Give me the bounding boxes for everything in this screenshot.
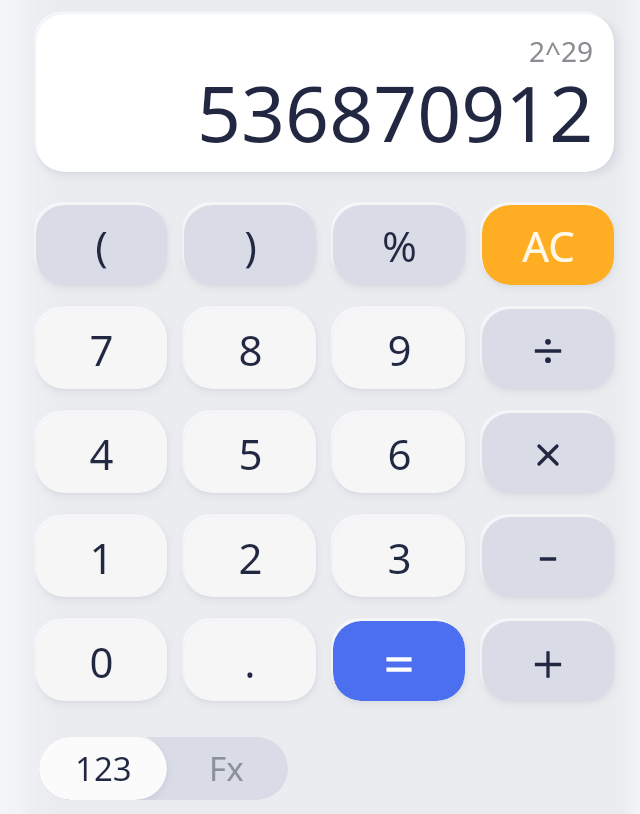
staticText: 5 bbox=[238, 425, 263, 482]
staticText: 0 bbox=[89, 633, 114, 690]
staticText: 123 bbox=[75, 746, 132, 791]
button[interactable]: 2 bbox=[184, 517, 316, 597]
button[interactable]: Fx bbox=[164, 737, 288, 800]
button[interactable]: ) bbox=[184, 205, 316, 285]
staticText: 6 bbox=[387, 425, 412, 482]
button[interactable]: . bbox=[184, 621, 316, 701]
button[interactable]: % bbox=[333, 205, 465, 285]
button[interactable]: Add bbox=[482, 621, 614, 701]
staticText: 1 bbox=[89, 529, 114, 586]
button[interactable]: 4 bbox=[36, 413, 167, 493]
button[interactable]: Equals bbox=[333, 621, 465, 701]
button[interactable]: 3 bbox=[333, 517, 465, 597]
button[interactable]: AC bbox=[482, 205, 614, 285]
staticText: . bbox=[244, 633, 256, 690]
staticText: 2^29 bbox=[529, 32, 594, 70]
button[interactable]: ( bbox=[36, 205, 167, 285]
staticText: 536870912 bbox=[197, 60, 594, 165]
button[interactable]: 5 bbox=[184, 413, 316, 493]
staticText: 8 bbox=[238, 321, 263, 378]
button[interactable]: 123 bbox=[39, 737, 167, 800]
staticText: ( bbox=[95, 217, 108, 274]
button[interactable]: Subtract bbox=[482, 517, 614, 597]
staticText: 2 bbox=[238, 529, 263, 586]
button[interactable]: 7 bbox=[36, 309, 167, 389]
staticText: 9 bbox=[387, 321, 412, 378]
staticText: 4 bbox=[89, 425, 114, 482]
button[interactable]: 8 bbox=[184, 309, 316, 389]
staticText: ) bbox=[244, 217, 257, 274]
staticText: % bbox=[382, 217, 417, 274]
button[interactable]: 9 bbox=[333, 309, 465, 389]
button[interactable]: 0 bbox=[36, 621, 167, 701]
button[interactable]: Multiply bbox=[482, 413, 614, 493]
staticText: AC bbox=[522, 217, 575, 274]
button[interactable]: 6 bbox=[333, 413, 465, 493]
staticText: 3 bbox=[387, 529, 412, 586]
staticText: Fx bbox=[209, 746, 244, 791]
staticText: 7 bbox=[89, 321, 114, 378]
button[interactable]: 1 bbox=[36, 517, 167, 597]
button[interactable]: Divide bbox=[482, 309, 614, 389]
